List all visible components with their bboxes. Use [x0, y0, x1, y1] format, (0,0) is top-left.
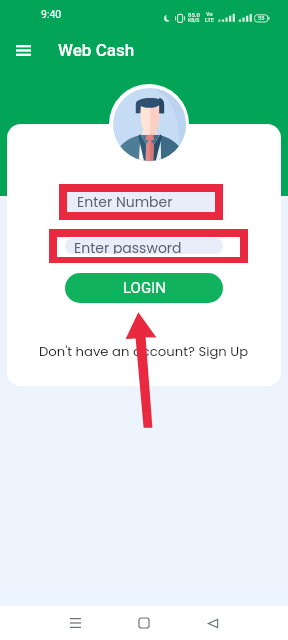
button[interactable]: Recent apps [57, 606, 93, 640]
staticText: 55 [258, 15, 265, 21]
staticText: KB/S [188, 17, 200, 23]
staticText: Don't have an account? Sign Up [39, 342, 249, 360]
staticText: Web Cash [58, 40, 135, 60]
button[interactable]: Home [126, 606, 162, 640]
staticText: 9:40 [41, 8, 62, 20]
staticText: LTE [205, 17, 214, 23]
button[interactable]: Enter Number [67, 192, 215, 212]
staticText: Enter password [74, 238, 182, 254]
other: Tap the LOGIN button [0, 0, 288, 640]
button[interactable]: Don't have an account? Sign Up [39, 342, 249, 360]
button[interactable]: Enter password [65, 238, 223, 254]
button[interactable]: Back [195, 606, 231, 640]
button[interactable]: LOGIN [65, 273, 223, 303]
staticText: 85.0 [188, 11, 200, 18]
staticText: LOGIN [123, 279, 166, 297]
staticText: Enter Number [77, 192, 173, 212]
button[interactable]: Open navigation menu [0, 28, 46, 72]
staticText: Vo [206, 11, 213, 17]
